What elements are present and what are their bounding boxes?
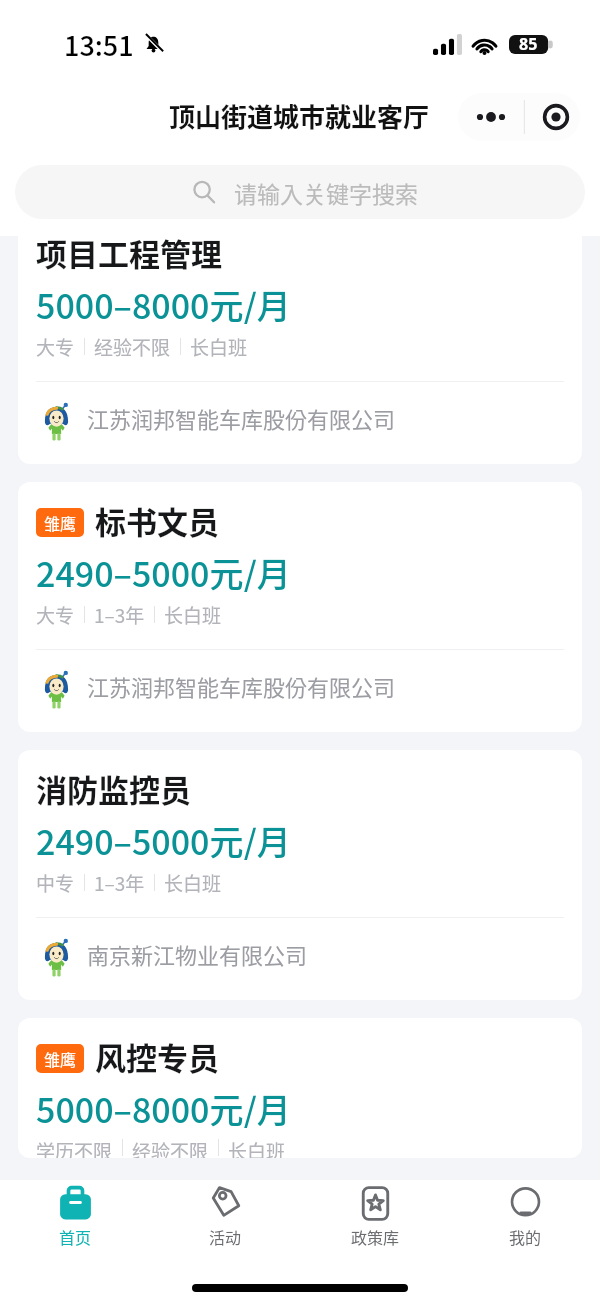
button[interactable]: More options and close [458,93,580,141]
staticText: 2490–5000元/月 [36,816,291,860]
button[interactable]: 活动 [150,1180,300,1260]
staticText: 5000–8000元/月 [36,280,291,324]
button[interactable]: 我的 [450,1180,600,1260]
staticText: 消防监控员 [36,766,191,810]
button[interactable]: 请输入关键字搜索 [15,165,585,219]
staticText: 长白班 [164,869,222,895]
staticText: 首页 [59,1225,92,1248]
staticText: 长白班 [228,1137,286,1158]
button[interactable]: 雏鹰 [18,1018,582,1158]
staticText: 中专 [36,869,75,895]
staticText: 85 [519,33,538,55]
staticText: 经验不限 [132,1137,209,1158]
staticText: 学历不限 [36,1137,113,1158]
staticText: 13:51 [64,25,134,64]
staticText: 1–3年 [94,869,145,895]
button[interactable]: 政策库 [300,1180,450,1260]
staticText: 大专 [36,601,75,627]
button[interactable]: 雏鹰 [18,482,582,732]
staticText: 风控专员 [95,1034,219,1078]
staticText: 项目工程管理 [36,236,222,274]
staticText: 顶山街道城市就业客厅 [169,97,430,135]
staticText: 大专 [36,333,75,359]
staticText: 我的 [509,1225,542,1248]
button[interactable]: 首页 [0,1180,150,1260]
staticText: 请输入关键字搜索 [234,176,418,209]
staticText: 南京新江物业有限公司 [87,938,308,970]
staticText: 经验不限 [94,333,171,359]
staticText: 雏鹰 [44,1047,77,1070]
button[interactable]: 项目工程管理 [18,236,582,464]
staticText: 活动 [209,1225,242,1248]
staticText: 政策库 [351,1225,400,1248]
staticText: 标书文员 [95,498,219,542]
staticText: 2490–5000元/月 [36,548,291,592]
staticText: 5000–8000元/月 [36,1084,291,1128]
staticText: 江苏润邦智能车库股份有限公司 [87,670,396,702]
button[interactable]: 消防监控员 [18,750,582,1000]
staticText: 江苏润邦智能车库股份有限公司 [87,402,396,434]
staticText: 雏鹰 [44,511,77,534]
staticText: 1–3年 [94,601,145,627]
staticText: 长白班 [190,333,248,359]
staticText: 长白班 [164,601,222,627]
